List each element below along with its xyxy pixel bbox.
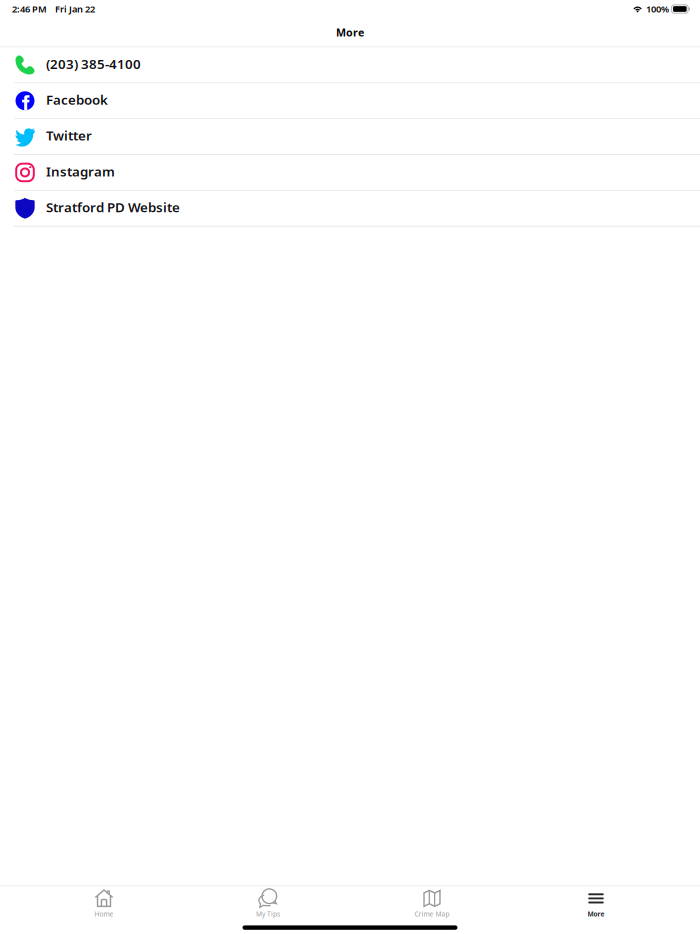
staticText: (203) 385-4100 [46,55,141,73]
button[interactable]: More [514,886,678,920]
staticText: More [587,909,604,918]
staticText: Crime Map [414,909,449,918]
staticText: More [336,25,364,39]
staticText: 2:46 PM [12,3,47,15]
staticText: My Tips [256,909,280,918]
staticText: Facebook [46,91,108,108]
button[interactable]: Instagram [0,155,700,190]
staticText: Twitter [46,126,92,144]
staticText: Instagram [46,162,115,180]
button[interactable]: (203) 385-4100 [0,47,700,82]
button[interactable]: Crime Map [350,886,514,920]
button[interactable]: Twitter [0,119,700,154]
staticText: 100% [646,3,669,15]
staticText: Home [94,909,113,918]
staticText: Stratford PD Website [46,198,180,216]
staticText: Fri Jan 22 [55,3,95,15]
button[interactable]: My Tips [186,886,350,920]
button[interactable]: Facebook [0,83,700,118]
button[interactable]: Stratford PD Website [0,191,700,226]
button[interactable]: Home [22,886,186,920]
